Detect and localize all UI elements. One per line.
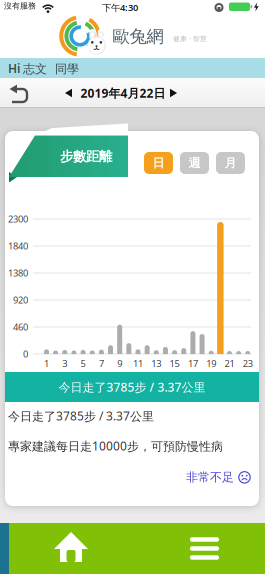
staticText: 1380	[8, 267, 28, 279]
button[interactable]: 週	[180, 152, 209, 174]
staticText: 非常不足	[186, 470, 234, 485]
staticText: 460	[13, 321, 28, 333]
staticText: 週	[188, 156, 200, 170]
staticText: 23	[243, 357, 253, 370]
button[interactable]: 選單	[132, 523, 265, 574]
staticText: 9	[117, 357, 122, 370]
staticText: 920	[13, 294, 28, 306]
staticText: 2019年4月22日	[80, 85, 165, 101]
staticText: 13	[151, 357, 161, 370]
button[interactable]: 前一天	[59, 78, 78, 108]
staticText: 7	[99, 357, 104, 370]
staticText: 歐兔網	[112, 26, 163, 47]
staticText: 日	[152, 156, 164, 170]
staticText: 1	[44, 357, 49, 370]
staticText: 19	[206, 357, 216, 370]
staticText: 步數距離	[60, 148, 112, 165]
staticText: 月	[224, 156, 236, 170]
staticText: 11	[133, 357, 143, 370]
staticText: 沒有服務	[4, 1, 36, 11]
button[interactable]: 返回	[0, 78, 34, 108]
staticText: 下午4:30	[102, 1, 138, 14]
staticText: 今日走了3785步 / 3.37公里	[58, 379, 205, 395]
button[interactable]: 後一天	[164, 78, 183, 108]
button[interactable]: 月	[216, 152, 245, 174]
button[interactable]: 首頁	[9, 523, 132, 574]
staticText: 專家建議每日走10000步，可預防慢性病	[8, 438, 223, 454]
staticText: 17	[188, 357, 198, 370]
staticText: 15	[170, 357, 180, 370]
staticText: 3	[62, 357, 67, 370]
staticText: 0	[23, 348, 28, 360]
staticText: 2300	[8, 213, 28, 225]
staticText: 健康 · 智慧	[173, 34, 207, 43]
staticText: 1840	[8, 240, 28, 252]
staticText: 21	[224, 357, 234, 370]
staticText: 5	[81, 357, 86, 370]
button[interactable]: 日	[144, 152, 173, 174]
staticText: Hi 志文 同學	[8, 60, 79, 76]
staticText: 今日走了3785步 / 3.37公里	[8, 408, 154, 424]
